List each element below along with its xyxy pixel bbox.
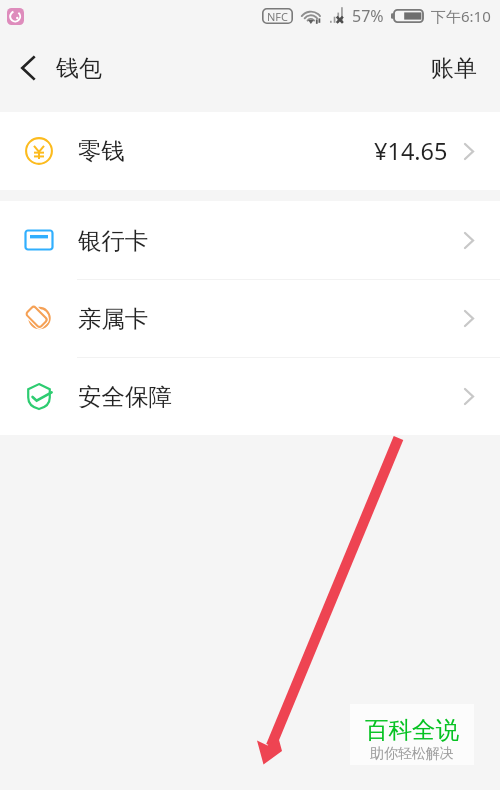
- button[interactable]: 亲属卡: [0, 279, 500, 357]
- staticText: 安全保障: [78, 382, 172, 412]
- staticText: NFC: [267, 9, 289, 24]
- staticText: 助你轻松解决: [370, 745, 454, 763]
- button[interactable]: 零钱: [0, 112, 500, 190]
- staticText: 57%: [352, 5, 384, 27]
- button[interactable]: 安全保障: [0, 357, 500, 435]
- staticText: 下午6:10: [431, 6, 491, 26]
- staticText: ¥14.65: [374, 135, 448, 167]
- staticText: 银行卡: [78, 226, 149, 256]
- staticText: 零钱: [78, 136, 125, 166]
- button[interactable]: 账单: [419, 46, 489, 91]
- button[interactable]: 银行卡: [0, 201, 500, 279]
- staticText: 百科全说: [365, 715, 459, 745]
- button[interactable]: Back: [7, 47, 49, 89]
- staticText: 钱包: [56, 54, 102, 83]
- staticText: 亲属卡: [78, 304, 149, 334]
- staticText: 账单: [431, 54, 477, 83]
